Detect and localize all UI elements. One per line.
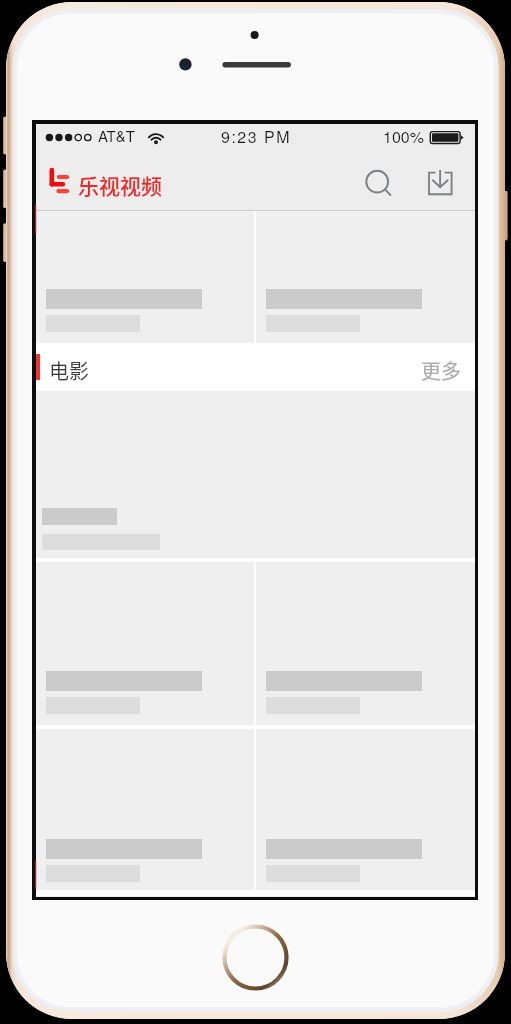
staticText: 乐视视频	[78, 170, 162, 200]
button[interactable]	[256, 211, 475, 343]
button[interactable]: LeTV home	[44, 169, 154, 201]
staticText: 电影	[49, 356, 89, 385]
button[interactable]: Search	[356, 161, 404, 209]
button[interactable]	[36, 562, 254, 725]
button[interactable]	[36, 729, 254, 890]
staticText: AT&T	[98, 125, 135, 146]
button[interactable]	[256, 729, 475, 890]
button[interactable]	[256, 562, 475, 725]
staticText: 100%	[383, 125, 424, 148]
staticText: 9:23 PM	[221, 125, 292, 148]
button[interactable]	[36, 391, 475, 558]
button[interactable]: Downloads	[417, 158, 465, 206]
button[interactable]: 电影	[36, 343, 475, 391]
button[interactable]: 更多	[421, 356, 461, 385]
button[interactable]	[36, 211, 254, 343]
